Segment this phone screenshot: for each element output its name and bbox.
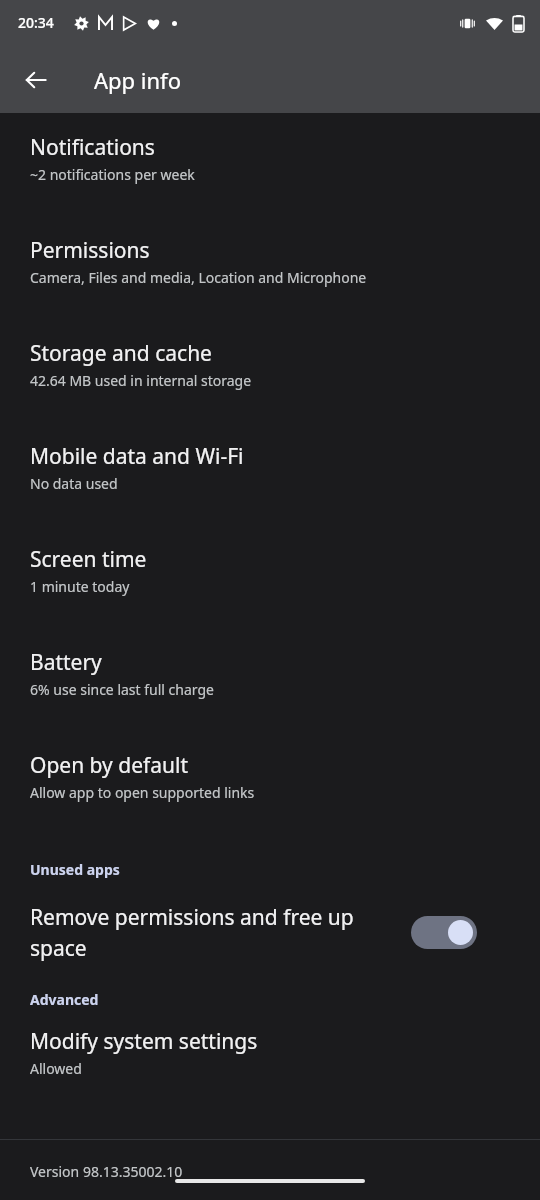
button[interactable]: Open by default [0,743,540,846]
button[interactable]: Back [12,56,60,104]
button[interactable]: Mobile data and Wi-Fi [0,434,540,537]
staticText: 20:34 [18,13,54,32]
staticText: App info [94,65,181,95]
staticText: 6% use since last full charge [30,680,214,699]
staticText: Allowed [30,1059,82,1078]
staticText: Notifications [30,133,155,162]
staticText: 1 minute today [30,577,130,596]
button[interactable]: Notifications [0,125,540,228]
staticText: No data used [30,474,118,493]
staticText: ~2 notifications per week [30,165,195,184]
button[interactable]: Remove permissions toggle [411,916,477,949]
button[interactable]: Remove permissions and free up space [0,889,540,976]
staticText: Camera, Files and media, Location and Mi… [30,268,367,287]
button[interactable]: Permissions [0,228,540,331]
staticText: Open by default [30,751,189,780]
staticText: Screen time [30,545,147,574]
button[interactable]: Modify system settings [0,1019,540,1122]
staticText: Advanced [30,990,99,1009]
staticText: Allow app to open supported links [30,783,255,802]
staticText: Version 98.13.35002.10 [30,1162,183,1181]
button[interactable]: Storage and cache [0,331,540,434]
button[interactable]: Battery [0,640,540,743]
staticText: Modify system settings [30,1027,258,1056]
staticText: Remove permissions and free up space [30,903,405,962]
staticText: Unused apps [30,860,120,879]
staticText: Battery [30,648,102,677]
staticText: Mobile data and Wi-Fi [30,442,244,471]
staticText: 42.64 MB used in internal storage [30,371,252,390]
staticText: Storage and cache [30,339,212,368]
button[interactable]: Screen time [0,537,540,640]
staticText: Permissions [30,236,150,265]
